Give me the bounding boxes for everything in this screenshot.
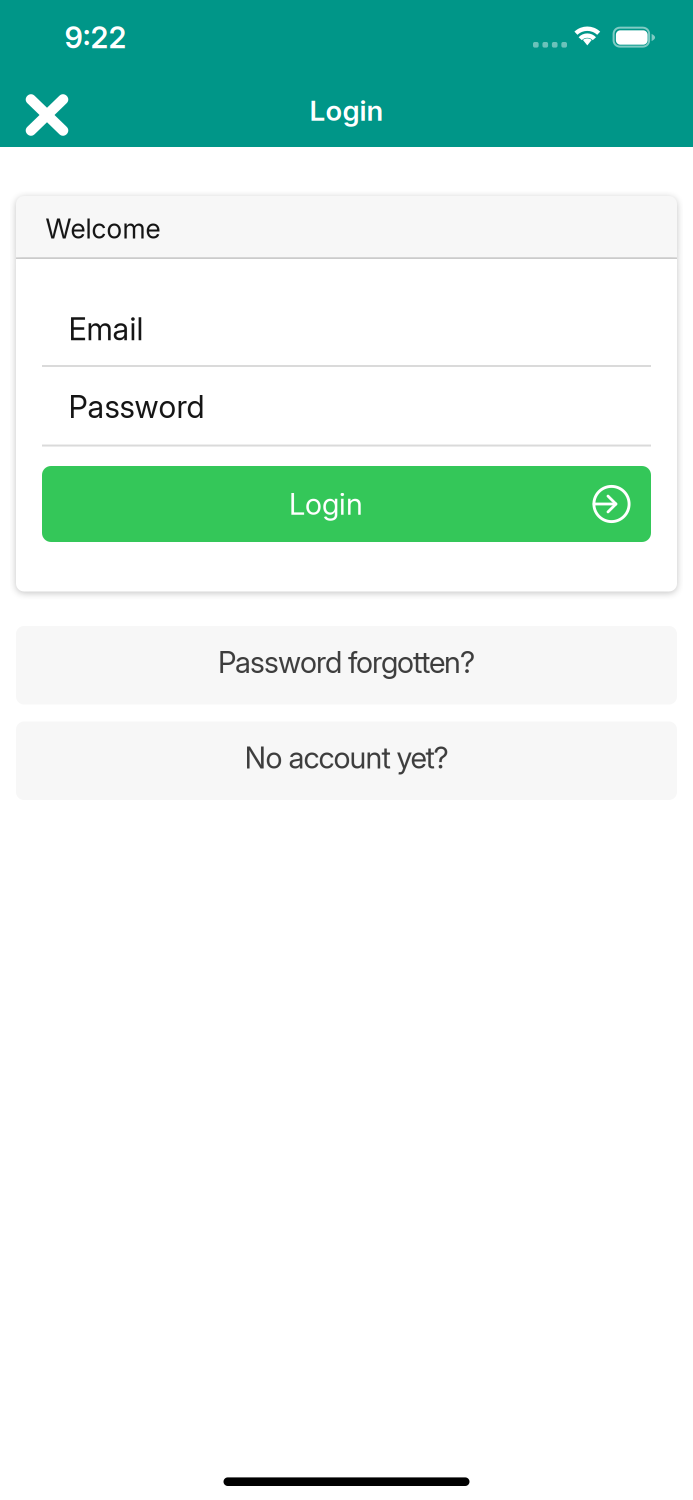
staticText: Email	[68, 311, 143, 347]
staticText: No account yet?	[244, 740, 448, 775]
button[interactable]: Password forgotten?	[16, 626, 677, 704]
button[interactable]: Password	[42, 367, 651, 446]
staticText: 9:22	[64, 20, 126, 55]
button[interactable]: No account yet?	[16, 721, 677, 800]
button[interactable]: Login	[42, 466, 651, 542]
button[interactable]: Email	[42, 295, 651, 367]
staticText: Password forgotten?	[218, 645, 475, 679]
staticText: Login	[309, 94, 383, 127]
staticText: Login	[289, 487, 363, 521]
button[interactable]: Close	[0, 70, 86, 147]
staticText: Password	[68, 389, 204, 425]
staticText: Welcome	[45, 213, 160, 244]
